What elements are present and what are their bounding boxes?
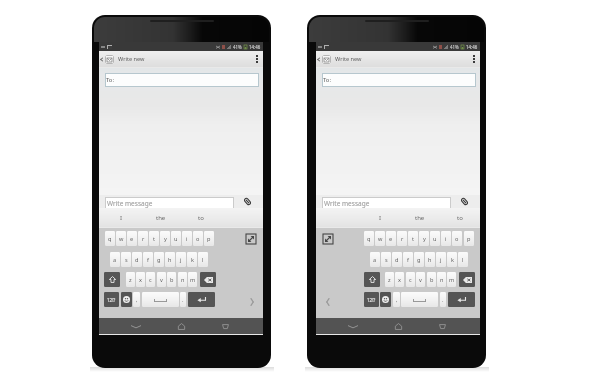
button[interactable]: e <box>386 231 396 246</box>
button[interactable]: f <box>143 252 153 267</box>
button[interactable]: To: <box>322 73 476 87</box>
button[interactable] <box>104 272 120 287</box>
button[interactable]: Attach <box>455 195 473 208</box>
button[interactable]: d <box>392 252 402 267</box>
button[interactable]: to <box>440 208 480 227</box>
button[interactable] <box>142 292 179 307</box>
button[interactable]: n <box>178 272 187 287</box>
button[interactable]: l <box>198 252 208 267</box>
button[interactable]: a <box>110 252 120 267</box>
button[interactable]: d <box>132 252 142 267</box>
button[interactable]: f <box>403 252 413 267</box>
button[interactable]: . <box>180 292 186 307</box>
button[interactable]: j <box>176 252 186 267</box>
button[interactable]: to <box>181 208 221 227</box>
button[interactable]: i <box>441 231 451 246</box>
button[interactable]: m <box>447 272 456 287</box>
button[interactable]: the <box>400 208 440 227</box>
button[interactable]: Resize keyboard <box>246 234 256 244</box>
staticText: x <box>139 276 142 284</box>
button[interactable]: n <box>437 272 446 287</box>
button[interactable]: Switch keyboard side <box>322 296 333 307</box>
button[interactable]: h <box>425 252 435 267</box>
button[interactable]: . <box>440 292 446 307</box>
button[interactable]: t <box>408 231 418 246</box>
button[interactable]: z <box>385 272 394 287</box>
button[interactable] <box>188 292 215 307</box>
button[interactable]: s <box>381 252 391 267</box>
button[interactable]: y <box>419 231 429 246</box>
button[interactable]: Recent apps <box>214 318 236 334</box>
button[interactable]: To: <box>105 73 259 87</box>
button[interactable]: Attach <box>238 195 256 208</box>
button[interactable]: p <box>204 231 214 246</box>
button[interactable]: 12!? <box>104 292 119 307</box>
button[interactable] <box>401 292 438 307</box>
button[interactable]: , <box>393 292 400 307</box>
button[interactable]: k <box>187 252 197 267</box>
button[interactable]: m <box>188 272 197 287</box>
button[interactable]: r <box>397 231 407 246</box>
button[interactable]: x <box>136 272 145 287</box>
button[interactable] <box>364 272 380 287</box>
button[interactable]: u <box>171 231 181 246</box>
button[interactable] <box>121 292 132 307</box>
staticText: a <box>113 256 117 264</box>
button[interactable]: Switch keyboard side <box>246 296 257 307</box>
button[interactable]: Back <box>125 318 147 334</box>
button[interactable]: the <box>141 208 181 227</box>
button[interactable]: y <box>160 231 170 246</box>
button[interactable]: o <box>193 231 203 246</box>
staticText: r <box>401 235 404 243</box>
button[interactable]: I <box>101 208 141 227</box>
button[interactable]: I <box>360 208 400 227</box>
button[interactable]: , <box>133 292 140 307</box>
button[interactable]: e <box>127 231 137 246</box>
button[interactable]: t <box>149 231 159 246</box>
button[interactable]: r <box>138 231 148 246</box>
button[interactable]: Back <box>342 318 364 334</box>
button[interactable]: Write message <box>105 197 234 209</box>
button[interactable]: g <box>414 252 424 267</box>
button[interactable]: b <box>427 272 436 287</box>
button[interactable]: More options <box>473 55 475 63</box>
staticText: y <box>423 235 426 243</box>
button[interactable]: h <box>165 252 175 267</box>
button[interactable]: p <box>464 231 474 246</box>
button[interactable] <box>200 272 216 287</box>
button[interactable]: 12!? <box>364 292 379 307</box>
button[interactable]: Recent apps <box>431 318 453 334</box>
button[interactable]: v <box>416 272 425 287</box>
button[interactable]: v <box>157 272 166 287</box>
button[interactable] <box>459 272 475 287</box>
button[interactable] <box>380 292 391 307</box>
button[interactable]: u <box>430 231 440 246</box>
button[interactable]: i <box>182 231 192 246</box>
button[interactable]: b <box>167 272 176 287</box>
button[interactable]: More options <box>256 55 258 63</box>
button[interactable] <box>448 292 475 307</box>
staticText: . <box>182 296 184 303</box>
button[interactable]: l <box>458 252 468 267</box>
staticText: e <box>130 235 134 243</box>
button[interactable]: x <box>395 272 404 287</box>
button[interactable]: a <box>370 252 380 267</box>
button[interactable]: Write new <box>99 51 149 67</box>
button[interactable]: Home <box>170 318 192 334</box>
button[interactable]: j <box>436 252 446 267</box>
button[interactable]: g <box>154 252 164 267</box>
button[interactable]: w <box>375 231 385 246</box>
button[interactable]: s <box>121 252 131 267</box>
button[interactable]: k <box>447 252 457 267</box>
button[interactable]: c <box>146 272 155 287</box>
button[interactable]: c <box>406 272 415 287</box>
button[interactable]: Write message <box>322 197 451 209</box>
button[interactable]: Home <box>387 318 409 334</box>
button[interactable]: q <box>364 231 374 246</box>
button[interactable]: Resize keyboard <box>323 234 333 244</box>
button[interactable]: z <box>126 272 135 287</box>
button[interactable]: o <box>452 231 462 246</box>
button[interactable]: q <box>105 231 115 246</box>
button[interactable]: Write new <box>316 51 366 67</box>
button[interactable]: w <box>116 231 126 246</box>
